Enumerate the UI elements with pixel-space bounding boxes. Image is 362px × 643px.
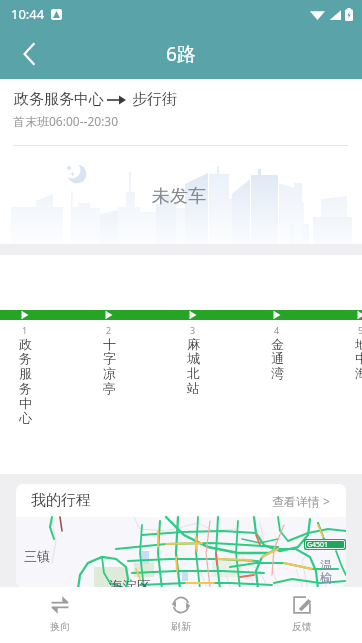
staticText: 三镇 [24,548,50,564]
staticText: 6路 [166,41,196,67]
staticText: 3 [190,324,196,336]
staticText: 政 务 服 务 中 心 [19,336,32,427]
staticText: 2 [106,324,112,336]
button[interactable]: 我的行程 [16,484,346,587]
staticText: 1 [22,324,28,336]
button[interactable]: 反馈 [241,587,362,643]
staticText: 地 中 海 [355,336,362,382]
staticText: 我的行程 [31,491,91,510]
staticText: 反馈 [292,620,312,633]
staticText: 海淀区 [109,578,151,587]
staticText: 换向 [50,620,70,633]
button[interactable]: 换向 [0,587,120,643]
staticText: 首末班06:00--20:30 [13,113,119,129]
staticText: 刷新 [171,620,191,633]
staticText: 麻 城 北 站 [187,336,200,397]
staticText: 政务服务中心 [14,90,104,109]
staticText: G4501 [307,540,329,550]
staticText: 温 榆 [320,557,332,586]
staticText: 查看详情 > [272,493,330,509]
staticText: 十 字 凉 亭 [103,336,116,397]
staticText: 未发车 [152,185,206,208]
button[interactable]: Back [9,34,49,74]
button[interactable]: 刷新 [120,587,241,643]
staticText: 10:44 [11,5,45,23]
staticText: 步行街 [132,90,177,109]
staticText: 4 [274,324,280,336]
staticText: 5 [358,324,362,336]
staticText: 金 通 湾 [271,336,284,382]
